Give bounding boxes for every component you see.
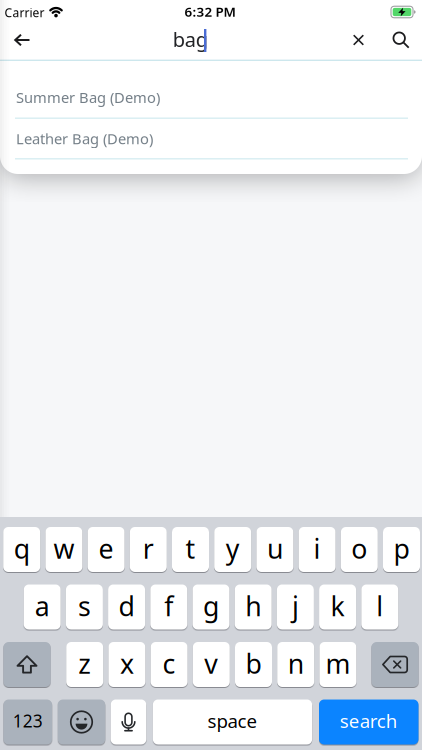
staticText: space xyxy=(207,708,257,733)
button[interactable]: Delete xyxy=(371,642,418,687)
button[interactable]: a xyxy=(24,584,61,629)
button[interactable]: d xyxy=(108,584,145,629)
staticText: Leather Bag (Demo) xyxy=(16,129,153,148)
button[interactable]: Emoji xyxy=(58,699,105,744)
staticText: z xyxy=(78,646,91,681)
button[interactable]: space xyxy=(153,699,312,744)
button[interactable]: k xyxy=(319,584,356,629)
button[interactable]: Shift xyxy=(3,642,50,687)
staticText: s xyxy=(78,588,91,623)
staticText: j xyxy=(292,588,299,623)
staticText: m xyxy=(325,646,350,681)
staticText: y xyxy=(226,531,240,566)
button[interactable]: search xyxy=(319,699,418,744)
button[interactable]: i xyxy=(299,527,336,572)
button[interactable]: o xyxy=(341,527,378,572)
staticText: d xyxy=(119,588,135,623)
staticText: l xyxy=(376,588,383,623)
staticText: i xyxy=(314,531,321,566)
button[interactable]: q xyxy=(3,527,40,572)
button[interactable]: r xyxy=(130,527,167,572)
button[interactable]: g xyxy=(192,584,229,629)
button[interactable]: h xyxy=(235,584,272,629)
staticText: r xyxy=(143,531,154,566)
staticText: h xyxy=(245,588,261,623)
button[interactable]: w xyxy=(45,527,82,572)
button[interactable]: z xyxy=(66,642,103,687)
staticText: o xyxy=(351,531,367,566)
staticText: x xyxy=(120,646,134,681)
staticText: n xyxy=(288,646,304,681)
button[interactable]: t xyxy=(172,527,209,572)
button[interactable]: l xyxy=(361,584,398,629)
button[interactable]: y xyxy=(214,527,251,572)
staticText: f xyxy=(164,588,173,623)
staticText: a xyxy=(35,588,50,623)
button[interactable]: Search xyxy=(380,18,422,62)
staticText: search xyxy=(340,708,398,733)
button[interactable]: v xyxy=(193,642,230,687)
staticText: q xyxy=(14,531,30,566)
button[interactable]: Back xyxy=(0,18,44,62)
staticText: t xyxy=(185,531,195,566)
button[interactable]: j xyxy=(277,584,314,629)
staticText: bag xyxy=(173,26,208,52)
button[interactable]: s xyxy=(66,584,103,629)
staticText: c xyxy=(163,646,176,681)
button[interactable]: b xyxy=(235,642,272,687)
staticText: Summer Bag (Demo) xyxy=(16,88,160,107)
staticText: 123 xyxy=(13,709,43,732)
staticText: w xyxy=(53,531,74,566)
button[interactable]: p xyxy=(383,527,420,572)
button[interactable]: Leather Bag (Demo) xyxy=(0,118,422,159)
staticText: v xyxy=(204,646,218,681)
staticText: 6:32 PM xyxy=(184,3,235,20)
staticText: k xyxy=(331,588,345,623)
button[interactable]: e xyxy=(88,527,125,572)
staticText: u xyxy=(267,531,283,566)
staticText: b xyxy=(245,646,261,681)
button[interactable]: f xyxy=(150,584,187,629)
button[interactable]: u xyxy=(256,527,293,572)
button[interactable]: 123 xyxy=(3,699,52,744)
button[interactable]: m xyxy=(319,642,356,687)
button[interactable]: x xyxy=(108,642,145,687)
staticText: p xyxy=(393,531,409,566)
button[interactable]: c xyxy=(151,642,188,687)
button[interactable]: Clear xyxy=(337,18,379,62)
button[interactable]: Dictate xyxy=(111,699,146,744)
staticText: g xyxy=(203,588,219,623)
button[interactable]: n xyxy=(277,642,314,687)
staticText: Carrier xyxy=(4,5,44,20)
button[interactable]: Summer Bag (Demo) xyxy=(0,76,422,118)
staticText: e xyxy=(99,531,114,566)
